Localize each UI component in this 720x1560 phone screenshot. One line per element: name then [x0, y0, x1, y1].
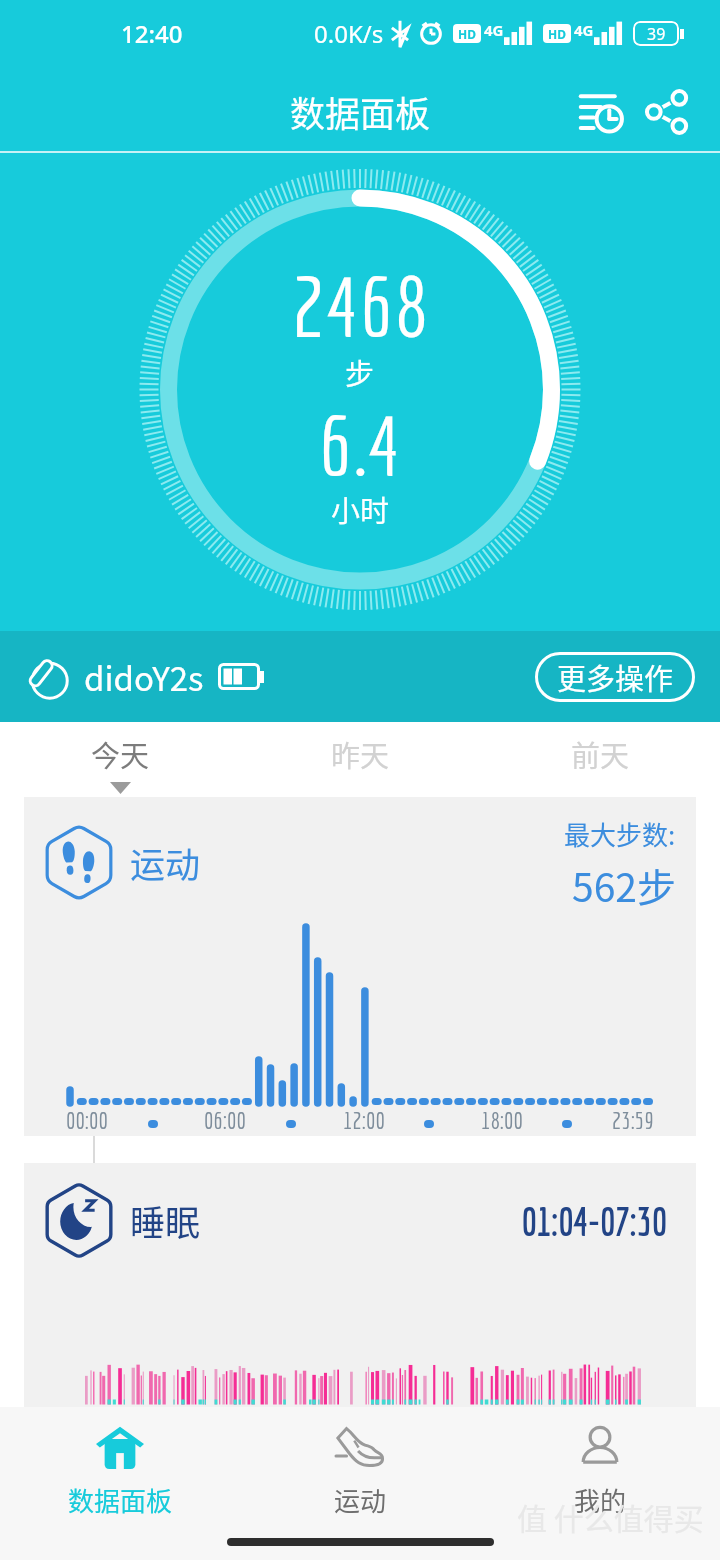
- staticText: 00:00: [66, 1107, 108, 1133]
- staticText: HD: [458, 26, 476, 42]
- staticText: 01:04-07:30: [521, 1198, 667, 1244]
- staticText: 步: [345, 351, 375, 393]
- button[interactable]: Share: [636, 81, 698, 143]
- staticText: 2468: [292, 258, 429, 353]
- staticText: 我的: [574, 1481, 627, 1519]
- staticText: 562步: [572, 857, 676, 913]
- staticText: 最大步数:: [564, 815, 676, 853]
- staticText: 前天: [571, 733, 630, 775]
- staticText: 今天: [91, 733, 150, 775]
- button[interactable]: [24, 1163, 696, 1407]
- staticText: 运动: [130, 837, 201, 888]
- button[interactable]: 数据面板: [0, 1407, 240, 1525]
- staticText: 小时: [331, 488, 390, 530]
- staticText: 昨天: [331, 733, 390, 775]
- staticText: 4G: [484, 20, 504, 40]
- staticText: 数据面板: [290, 86, 431, 137]
- staticText: 运动: [334, 1481, 387, 1519]
- button[interactable]: 我的: [480, 1407, 720, 1525]
- button[interactable]: 运动: [240, 1407, 480, 1525]
- staticText: didoY2s: [84, 653, 204, 701]
- staticText: 数据面板: [68, 1481, 173, 1519]
- staticText: 12:00: [343, 1107, 385, 1133]
- staticText: 39: [647, 23, 666, 45]
- staticText: 更多操作: [557, 656, 674, 698]
- staticText: 4G: [574, 20, 594, 40]
- button[interactable]: [24, 797, 696, 1136]
- staticText: 12:40: [121, 17, 183, 50]
- staticText: 睡眠: [130, 1195, 201, 1246]
- staticText: 值 什么值得买: [517, 1495, 704, 1538]
- button[interactable]: 前天: [480, 722, 720, 797]
- button[interactable]: 今天: [0, 722, 240, 797]
- staticText: HD: [548, 26, 566, 42]
- staticText: 0.0K/s: [314, 17, 384, 50]
- staticText: 18:00: [481, 1107, 523, 1133]
- staticText: 6.4: [319, 397, 402, 492]
- staticText: 23:59: [612, 1107, 654, 1133]
- button[interactable]: History: [570, 81, 632, 143]
- button[interactable]: 昨天: [240, 722, 480, 797]
- staticText: 06:00: [204, 1107, 246, 1133]
- button[interactable]: 更多操作: [535, 652, 695, 702]
